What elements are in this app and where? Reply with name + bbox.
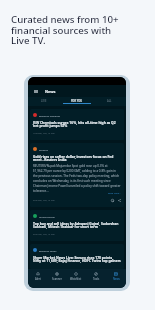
staticText: Watchlist [70, 277, 82, 281]
staticText: LIVE [41, 99, 47, 103]
staticText: 10:03am, Tue, 13 Sep [33, 132, 55, 135]
staticText: 09:54am, Tue, 13 Sep [33, 199, 55, 202]
staticText: News [113, 277, 120, 281]
staticText: Curated news from 10+ financial sources … [11, 13, 119, 47]
staticText: News [45, 89, 56, 94]
button[interactable]: Tools [86, 269, 106, 288]
button[interactable]: Open navigation menu [32, 88, 39, 95]
button[interactable]: Share [117, 198, 121, 202]
staticText: Gold rises on softer dollar, investors f… [33, 154, 121, 162]
button[interactable]: News [106, 269, 126, 288]
staticText: Moneycontrol [39, 215, 55, 218]
staticText: ALL [107, 99, 112, 103]
button[interactable]: Alert [28, 269, 47, 288]
button[interactable]: Watchlist [66, 269, 86, 288]
staticText: Share Market News Live: Sensex rises 170… [33, 255, 121, 263]
staticText: Business Standard [39, 114, 61, 117]
staticText: JSW Chemicals surges 16%, hits all-time … [33, 120, 121, 128]
staticText: Top buy and sell ideas by Ashwani Gujral… [33, 221, 121, 229]
button[interactable]: Moneycontrol [30, 210, 124, 241]
button[interactable]: LIVE [28, 97, 60, 106]
staticText: Business Today [39, 249, 57, 252]
staticText: FOR YOU [71, 99, 83, 103]
staticText: Scanner [52, 277, 62, 281]
button[interactable]: Business Today [30, 244, 124, 269]
staticText: Alert [35, 277, 41, 281]
staticText: Tools [93, 277, 100, 281]
button[interactable]: Translate [110, 198, 114, 202]
button[interactable]: FOR YOU [60, 97, 93, 106]
button[interactable]: Read More... [108, 192, 121, 195]
button[interactable]: ALL [93, 97, 126, 106]
staticText: 09:37am, Tue, 13 Sep [33, 233, 55, 236]
button[interactable]: Business Standard [30, 109, 124, 140]
button[interactable]: Scanner [47, 269, 66, 288]
staticText: Reuters [39, 148, 48, 151]
staticText: REUTERS/Rupak Majumdar Spot gold rose up… [33, 164, 121, 192]
button[interactable]: Reuters [30, 143, 124, 207]
